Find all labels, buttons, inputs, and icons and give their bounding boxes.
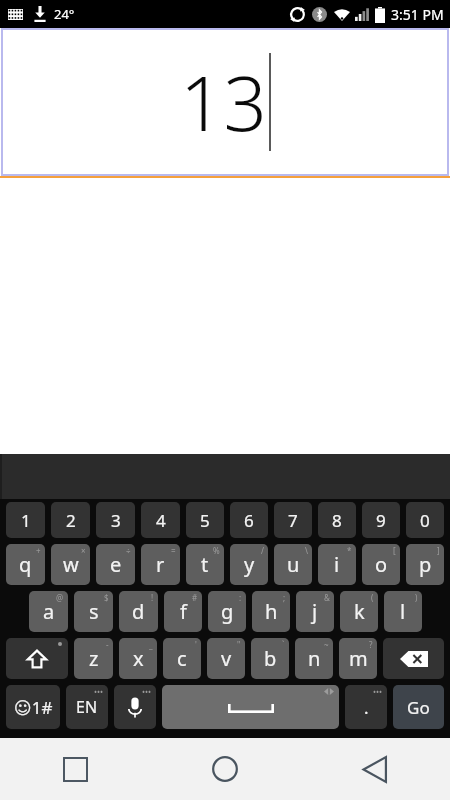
- staticText: ]: [437, 545, 440, 556]
- button[interactable]: 4: [141, 502, 180, 538]
- staticText: 13: [180, 50, 267, 154]
- button[interactable]: w: [51, 544, 90, 585]
- button[interactable]: 7: [274, 502, 312, 538]
- button[interactable]: h: [252, 591, 290, 632]
- button[interactable]: Home: [150, 738, 300, 800]
- button[interactable]: a: [29, 591, 68, 632]
- staticText: q: [19, 551, 32, 578]
- button[interactable]: 5: [186, 502, 224, 538]
- staticText: 0: [420, 509, 430, 532]
- staticText: (: [371, 592, 374, 603]
- staticText: ': [195, 639, 197, 650]
- staticText: /: [261, 545, 264, 556]
- staticText: l: [400, 598, 406, 625]
- staticText: m: [349, 645, 368, 672]
- button[interactable]: t: [186, 544, 224, 585]
- button[interactable]: Go: [393, 685, 444, 729]
- staticText: Go: [407, 696, 430, 719]
- staticText: $: [104, 592, 109, 603]
- staticText: %: [213, 545, 220, 556]
- button[interactable]: v: [207, 638, 245, 679]
- staticText: d: [132, 598, 145, 625]
- button[interactable]: 1: [6, 502, 45, 538]
- button[interactable]: m: [339, 638, 377, 679]
- staticText: u: [287, 551, 300, 578]
- button[interactable]: d: [119, 591, 158, 632]
- staticText: ×: [81, 545, 86, 556]
- staticText: `: [282, 639, 285, 650]
- staticText: r: [156, 551, 165, 578]
- staticText: •••: [94, 686, 104, 697]
- button[interactable]: Backspace: [383, 638, 444, 679]
- button[interactable]: y: [230, 544, 268, 585]
- staticText: 8: [332, 509, 342, 532]
- button[interactable]: 9: [362, 502, 400, 538]
- button[interactable]: z: [74, 638, 113, 679]
- staticText: 3:51 PM: [391, 5, 444, 24]
- staticText: z: [89, 645, 99, 672]
- button[interactable]: 8: [318, 502, 356, 538]
- staticText: k: [354, 598, 365, 625]
- staticText: ~: [324, 639, 329, 650]
- staticText: EN: [76, 696, 98, 718]
- staticText: 7: [288, 509, 298, 532]
- button[interactable]: p: [406, 544, 444, 585]
- button[interactable]: i: [318, 544, 356, 585]
- staticText: 6: [244, 509, 254, 532]
- button[interactable]: e: [96, 544, 135, 585]
- button[interactable]: ☺1#: [6, 685, 60, 729]
- button[interactable]: 6: [230, 502, 268, 538]
- staticText: f: [180, 598, 187, 625]
- button[interactable]: g: [208, 591, 246, 632]
- staticText: a: [43, 598, 55, 625]
- button[interactable]: Recent apps: [0, 738, 150, 800]
- staticText: t: [201, 551, 209, 578]
- button[interactable]: Shift: [6, 638, 68, 679]
- staticText: !: [151, 592, 154, 603]
- button[interactable]: o: [362, 544, 400, 585]
- button[interactable]: c: [163, 638, 201, 679]
- staticText: e: [110, 551, 122, 578]
- staticText: p: [419, 551, 432, 578]
- button[interactable]: x: [119, 638, 157, 679]
- button[interactable]: .: [345, 685, 387, 729]
- staticText: j: [312, 598, 318, 625]
- staticText: 9: [376, 509, 386, 532]
- button[interactable]: Back: [300, 738, 450, 800]
- button[interactable]: r: [141, 544, 180, 585]
- button[interactable]: Space: [162, 685, 339, 729]
- staticText: -: [106, 639, 109, 650]
- staticText: :: [239, 592, 242, 603]
- staticText: x: [133, 645, 144, 672]
- button[interactable]: b: [251, 638, 289, 679]
- staticText: v: [221, 645, 232, 672]
- staticText: •••: [142, 686, 152, 697]
- staticText: ☺1#: [14, 696, 53, 719]
- staticText: ÷: [126, 545, 131, 556]
- button[interactable]: q: [6, 544, 45, 585]
- button[interactable]: EN: [66, 685, 108, 729]
- button[interactable]: 0: [406, 502, 444, 538]
- staticText: \: [305, 545, 308, 556]
- staticText: .: [364, 696, 369, 719]
- staticText: *: [347, 545, 352, 556]
- button[interactable]: f: [164, 591, 202, 632]
- staticText: =: [171, 545, 176, 556]
- button[interactable]: j: [296, 591, 334, 632]
- staticText: i: [334, 551, 340, 578]
- button[interactable]: n: [295, 638, 333, 679]
- button[interactable]: 3: [96, 502, 135, 538]
- staticText: 2: [66, 509, 76, 532]
- staticText: o: [375, 551, 388, 578]
- button[interactable]: l: [384, 591, 422, 632]
- button[interactable]: k: [340, 591, 378, 632]
- button[interactable]: 2: [51, 502, 90, 538]
- staticText: s: [89, 598, 99, 625]
- button[interactable]: s: [74, 591, 113, 632]
- button[interactable]: Voice input: [114, 685, 156, 729]
- staticText: @: [56, 592, 64, 603]
- button[interactable]: u: [274, 544, 312, 585]
- button[interactable]: 13: [1, 28, 449, 176]
- staticText: +: [36, 545, 41, 556]
